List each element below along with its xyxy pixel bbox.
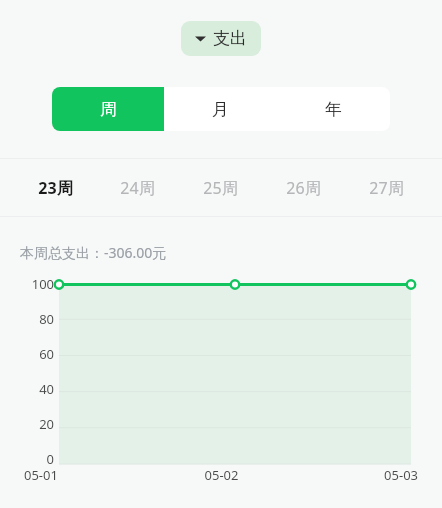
staticText: 本周总支出：-306.00元 [20, 243, 167, 262]
staticText: 60 [39, 345, 54, 363]
button[interactable]: 24周 [96, 159, 179, 216]
staticText: 05-03 [287, 466, 418, 484]
staticText: 40 [39, 380, 54, 398]
button[interactable]: 年 [277, 87, 390, 131]
button[interactable]: 支出 [181, 21, 261, 56]
staticText: 100 [31, 275, 54, 293]
staticText: 月 [212, 99, 229, 120]
staticText: 26周 [286, 177, 321, 199]
button[interactable]: 周 [52, 87, 164, 131]
staticText: 23周 [38, 177, 73, 199]
staticText: 05-01 [24, 466, 156, 484]
button[interactable]: 26周 [262, 159, 345, 216]
staticText: 05-02 [156, 466, 287, 484]
staticText: 支出 [213, 28, 247, 49]
staticText: 24周 [120, 177, 155, 199]
button[interactable]: 27周 [345, 159, 428, 216]
staticText: 27周 [369, 177, 404, 199]
staticText: 20 [39, 415, 54, 433]
staticText: 年 [325, 99, 342, 120]
button[interactable]: 25周 [179, 159, 262, 216]
staticText: 周 [100, 99, 117, 120]
button[interactable]: 23周 [14, 159, 96, 216]
staticText: 0 [46, 450, 54, 468]
staticText: 25周 [203, 177, 238, 199]
button[interactable]: 月 [164, 87, 277, 131]
staticText: 80 [39, 310, 54, 328]
